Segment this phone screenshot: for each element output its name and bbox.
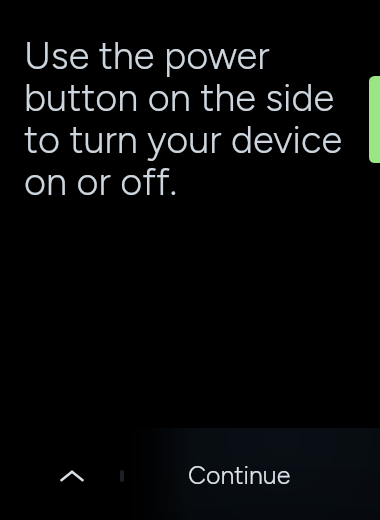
- button[interactable]: Expand: [48, 452, 96, 500]
- staticText: Use the power button on the side to turn…: [24, 33, 349, 205]
- button[interactable]: Continue: [134, 425, 344, 520]
- staticText: Continue: [188, 460, 291, 490]
